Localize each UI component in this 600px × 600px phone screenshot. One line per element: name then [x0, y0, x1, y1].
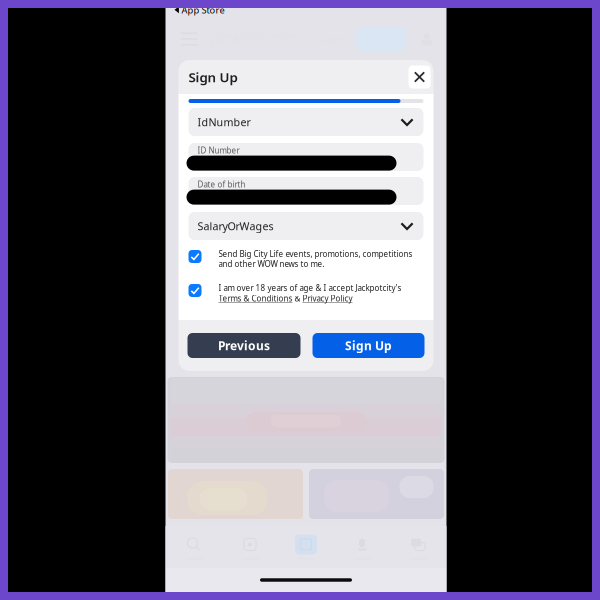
- staticText: Privacy Policy: [302, 293, 352, 304]
- staticText: Sign Up: [188, 68, 237, 86]
- staticText: Send Big City Life events, promotions, c…: [218, 249, 412, 259]
- button[interactable]: Age confirmation: [188, 284, 201, 297]
- staticText: App Store: [181, 4, 224, 16]
- staticText: Sign Up: [345, 337, 392, 353]
- staticText: &: [292, 293, 302, 304]
- staticText: Previous: [218, 337, 270, 353]
- button[interactable]: Casino: [278, 529, 334, 565]
- button[interactable]: Previous: [187, 333, 300, 358]
- staticText: Terms & Conditions: [218, 293, 292, 304]
- button[interactable]: Terms & Conditions: [218, 294, 292, 302]
- staticText: and other WOW news to me.: [218, 259, 324, 269]
- staticText: ID Number: [197, 145, 239, 156]
- button[interactable]: SalaryOrWages: [188, 212, 423, 240]
- button[interactable]: Close: [408, 65, 430, 88]
- button[interactable]: IdNumber: [188, 108, 423, 136]
- staticText: SalaryOrWages: [197, 219, 273, 233]
- button[interactable]: Menu: [180, 31, 197, 46]
- staticText: Date of birth: [197, 179, 245, 190]
- staticText: I am over 18 years of age & I accept Jac…: [218, 283, 401, 293]
- button[interactable]: Marketing opt-in: [188, 250, 201, 263]
- staticText: IdNumber: [197, 115, 250, 129]
- button[interactable]: Sign Up: [312, 333, 424, 358]
- button[interactable]: Privacy Policy: [302, 294, 352, 302]
